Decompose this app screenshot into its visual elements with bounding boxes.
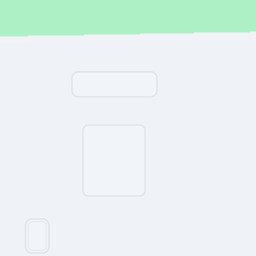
- button[interactable]: Search field: [72, 72, 157, 97]
- button[interactable]: Button: [25, 219, 49, 253]
